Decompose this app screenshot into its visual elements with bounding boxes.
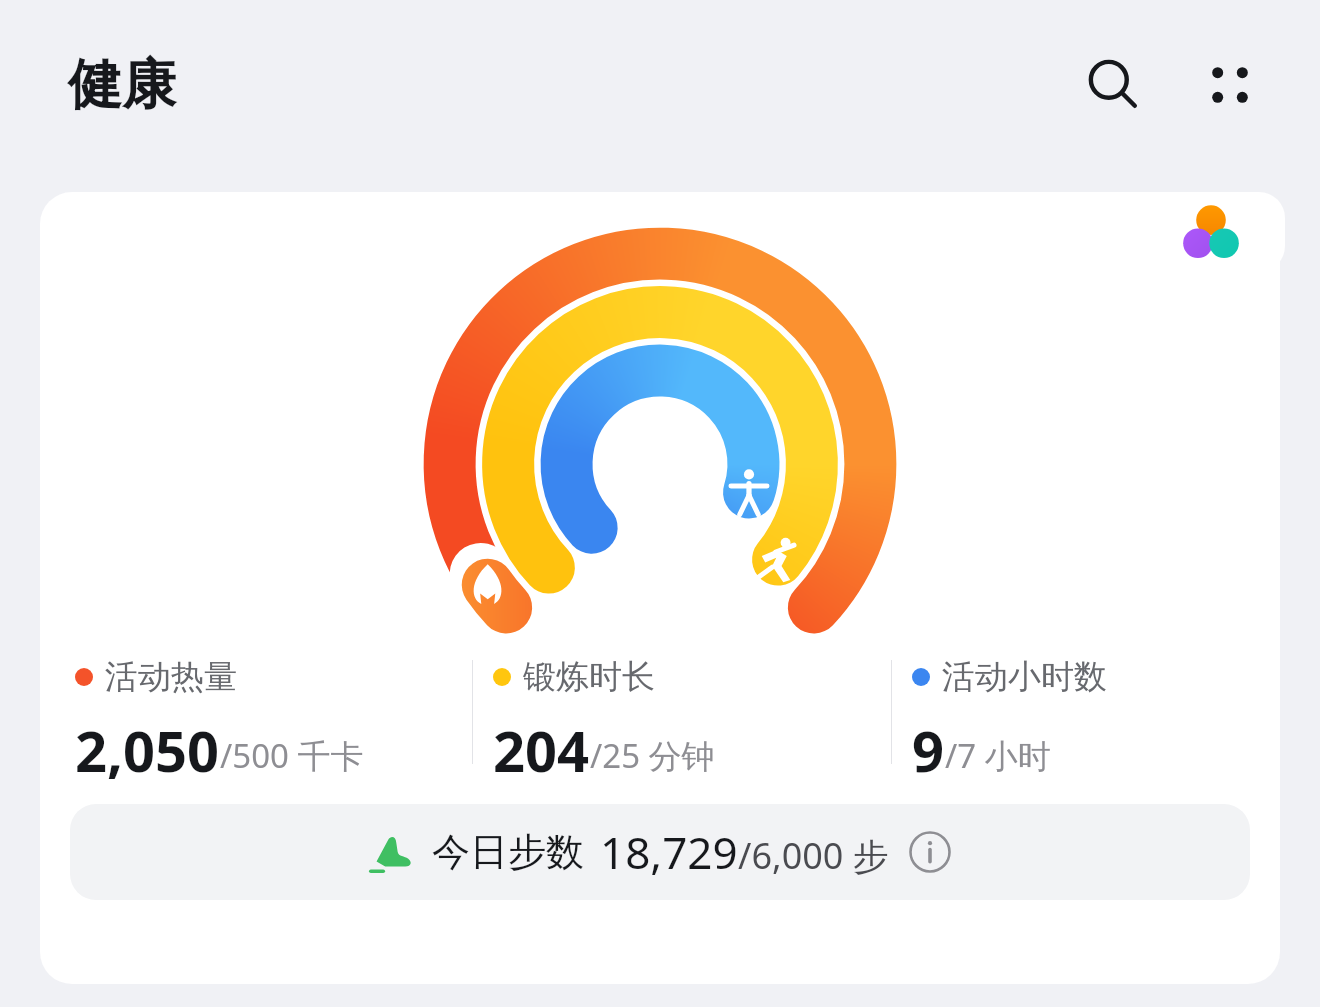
button[interactable]: 活动热量: [40, 192, 1280, 984]
staticText: 活动小时数: [942, 656, 1107, 698]
button[interactable]: Health app shortcut: [1137, 192, 1285, 272]
button[interactable]: More options: [1192, 47, 1268, 123]
button[interactable]: 锻炼时长: [473, 642, 891, 782]
staticText: 9: [912, 712, 945, 782]
button[interactable]: 活动小时数: [892, 642, 1280, 782]
staticText: 活动热量: [105, 656, 237, 698]
staticText: 18,729: [600, 822, 738, 882]
button[interactable]: 今日步数: [70, 804, 1250, 900]
button[interactable]: 活动热量: [40, 642, 472, 782]
staticText: /6,000 步: [738, 831, 889, 880]
staticText: /25 分钟: [590, 733, 715, 778]
staticText: 204: [493, 712, 590, 782]
staticText: 今日步数: [432, 828, 584, 876]
staticText: 2,050: [75, 712, 220, 782]
button[interactable]: Search: [1076, 47, 1152, 123]
staticText: /500 千卡: [220, 733, 364, 778]
button[interactable]: Steps info: [905, 827, 955, 877]
staticText: /7 小时: [945, 733, 1051, 778]
staticText: 健康: [68, 51, 176, 119]
staticText: 锻炼时长: [523, 656, 655, 698]
